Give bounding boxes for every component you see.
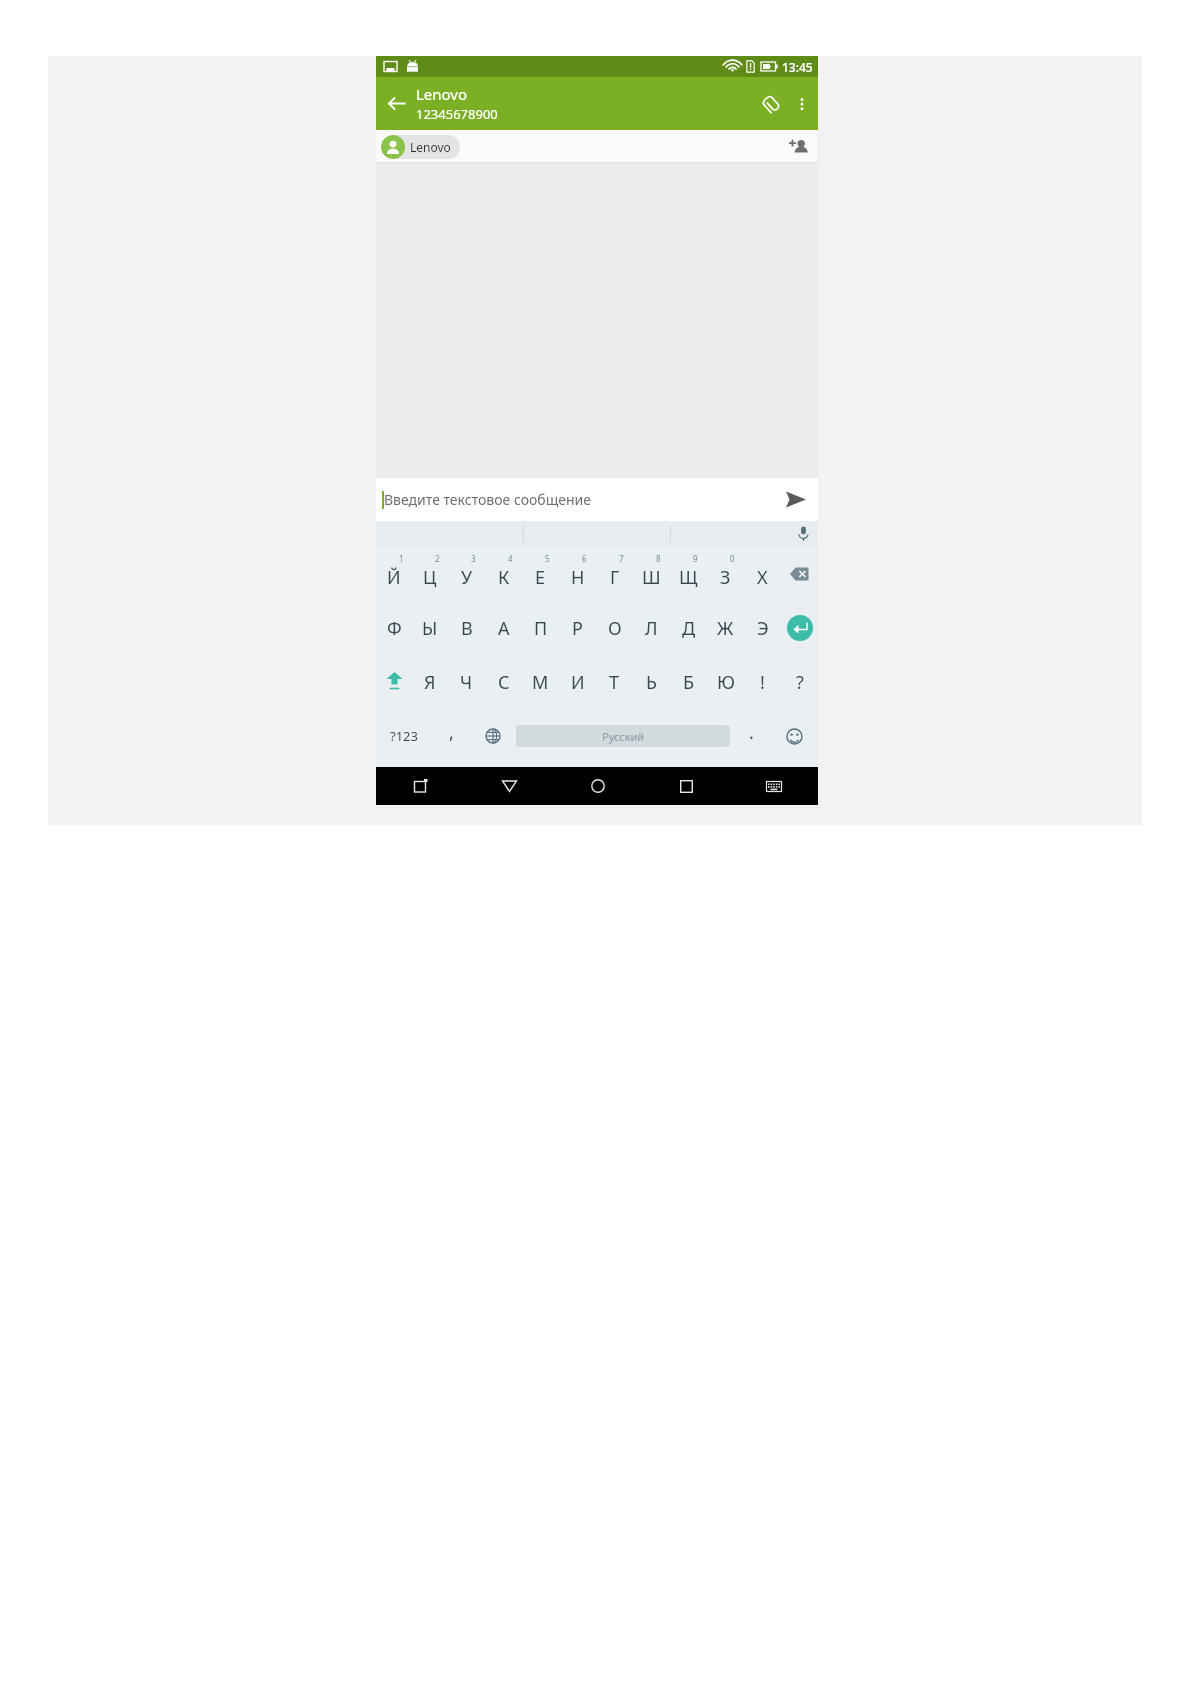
button[interactable]: , bbox=[432, 709, 471, 763]
button[interactable]: 0 bbox=[707, 547, 744, 601]
button[interactable]: Lenovo bbox=[416, 84, 755, 123]
button[interactable]: 3 bbox=[448, 547, 485, 601]
staticText: , bbox=[449, 720, 454, 745]
staticText: Р bbox=[572, 616, 583, 641]
staticText: Lenovo bbox=[410, 139, 451, 155]
staticText: Ю bbox=[717, 670, 735, 695]
button[interactable]: . bbox=[732, 709, 771, 763]
button[interactable]: Ы bbox=[412, 601, 448, 655]
staticText: 7 bbox=[619, 553, 624, 564]
button[interactable]: Ю bbox=[707, 655, 744, 709]
staticText: А bbox=[498, 616, 510, 641]
button[interactable]: Т bbox=[596, 655, 633, 709]
staticText: Й bbox=[387, 565, 401, 590]
button[interactable]: А bbox=[485, 601, 522, 655]
button[interactable]: Back bbox=[376, 77, 416, 130]
staticText: Э bbox=[757, 616, 769, 641]
button[interactable]: Attach bbox=[755, 77, 789, 130]
button[interactable]: Send bbox=[774, 478, 818, 521]
button[interactable]: Введите текстовое сообщение bbox=[384, 490, 774, 509]
staticText: О bbox=[608, 616, 622, 641]
button[interactable]: Change language bbox=[471, 709, 514, 763]
button[interactable]: Hide keyboard bbox=[730, 767, 818, 805]
button[interactable]: ! bbox=[744, 655, 781, 709]
button[interactable]: Д bbox=[670, 601, 707, 655]
button[interactable]: Home bbox=[554, 767, 642, 805]
staticText: П bbox=[534, 616, 548, 641]
button[interactable]: Split screen bbox=[376, 767, 465, 805]
staticText: Н bbox=[571, 565, 585, 590]
button[interactable]: Русский bbox=[516, 725, 730, 747]
staticText: ?123 bbox=[390, 727, 418, 745]
staticText: И bbox=[571, 670, 585, 695]
button[interactable]: Shift bbox=[376, 655, 412, 709]
button[interactable]: Lenovo bbox=[381, 135, 460, 159]
button[interactable]: Х bbox=[744, 547, 781, 601]
staticText: 9 bbox=[693, 553, 698, 564]
button[interactable]: 2 bbox=[412, 547, 448, 601]
button[interactable]: Enter bbox=[781, 601, 818, 655]
staticText: 1 bbox=[399, 553, 404, 564]
button[interactable]: Emoji bbox=[771, 709, 818, 763]
button[interactable]: 1 bbox=[376, 547, 412, 601]
staticText: Ц bbox=[423, 565, 437, 590]
button[interactable]: П bbox=[522, 601, 559, 655]
button[interactable]: И bbox=[559, 655, 596, 709]
staticText: Д bbox=[682, 616, 696, 641]
staticText: 5 bbox=[545, 553, 550, 564]
button[interactable]: М bbox=[522, 655, 559, 709]
staticText: 2 bbox=[435, 553, 440, 564]
staticText: Г bbox=[610, 565, 620, 590]
button[interactable]: О bbox=[596, 601, 633, 655]
button[interactable]: Б bbox=[670, 655, 707, 709]
button[interactable]: Ф bbox=[376, 601, 412, 655]
staticText: . bbox=[749, 720, 754, 745]
staticText: 13:45 bbox=[782, 59, 813, 75]
staticText: 6 bbox=[582, 553, 587, 564]
staticText: Т bbox=[609, 670, 620, 695]
staticText: М bbox=[532, 670, 549, 695]
staticText: Х bbox=[757, 565, 768, 590]
button[interactable]: Add recipient bbox=[783, 130, 813, 163]
button[interactable]: More options bbox=[789, 77, 815, 130]
staticText: Ы bbox=[422, 616, 438, 641]
button[interactable]: Ь bbox=[633, 655, 670, 709]
button[interactable]: 4 bbox=[485, 547, 522, 601]
staticText: Введите текстовое сообщение bbox=[384, 490, 591, 509]
button[interactable]: 7 bbox=[596, 547, 633, 601]
staticText: 0 bbox=[730, 553, 735, 564]
button[interactable]: Ч bbox=[448, 655, 485, 709]
button[interactable]: Ж bbox=[707, 601, 744, 655]
button[interactable]: 8 bbox=[633, 547, 670, 601]
staticText: ! bbox=[760, 670, 765, 695]
staticText: З bbox=[720, 565, 731, 590]
staticText: 8 bbox=[656, 553, 661, 564]
staticText: Lenovo bbox=[416, 84, 468, 104]
staticText: В bbox=[461, 616, 473, 641]
staticText: 3 bbox=[471, 553, 476, 564]
button[interactable]: Л bbox=[633, 601, 670, 655]
staticText: 4 bbox=[508, 553, 513, 564]
button[interactable]: 5 bbox=[522, 547, 559, 601]
button[interactable]: Я bbox=[412, 655, 448, 709]
button[interactable]: Р bbox=[559, 601, 596, 655]
staticText: Ш bbox=[642, 565, 661, 590]
button[interactable]: Backspace bbox=[781, 547, 818, 601]
button[interactable]: Э bbox=[744, 601, 781, 655]
staticText: Л bbox=[645, 616, 658, 641]
button[interactable]: В bbox=[448, 601, 485, 655]
button[interactable]: ? bbox=[781, 655, 818, 709]
button[interactable]: 6 bbox=[559, 547, 596, 601]
button[interactable]: С bbox=[485, 655, 522, 709]
staticText: Щ bbox=[679, 565, 698, 590]
button[interactable]: Voice input bbox=[788, 521, 818, 547]
button[interactable]: 9 bbox=[670, 547, 707, 601]
staticText: 12345678900 bbox=[416, 105, 498, 123]
staticText: ? bbox=[796, 670, 804, 695]
button[interactable]: Back bbox=[465, 767, 554, 805]
staticText: Е bbox=[535, 565, 546, 590]
button[interactable]: ?123 bbox=[376, 709, 432, 763]
staticText: Ь bbox=[646, 670, 657, 695]
staticText: Ч bbox=[460, 670, 473, 695]
button[interactable]: Recents bbox=[642, 767, 730, 805]
